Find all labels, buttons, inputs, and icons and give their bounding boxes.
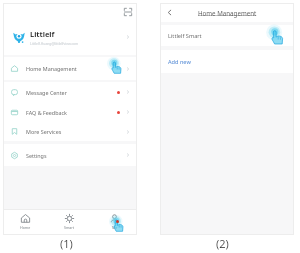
staticText: Me bbox=[112, 225, 118, 230]
button[interactable]: Message Center bbox=[3, 82, 137, 102]
staticText: FAQ & Feedback bbox=[26, 109, 67, 116]
button[interactable]: Me tab bbox=[92, 211, 137, 232]
staticText: Home bbox=[20, 225, 31, 230]
staticText: (1) bbox=[60, 236, 73, 251]
button[interactable]: Settings bbox=[3, 144, 137, 166]
staticText: Littlelf.Huang@littlelfview.com bbox=[30, 41, 79, 46]
staticText: (2) bbox=[216, 236, 229, 251]
staticText: Littlelf bbox=[30, 29, 55, 39]
button[interactable]: Add new bbox=[160, 50, 294, 73]
button[interactable]: More Services bbox=[3, 122, 137, 141]
staticText: Home Management bbox=[198, 9, 257, 17]
staticText: Home Management bbox=[26, 65, 77, 72]
staticText: More Services bbox=[26, 128, 62, 135]
button[interactable]: Home tab bbox=[3, 211, 47, 232]
staticText: Settings bbox=[26, 152, 47, 159]
staticText: Message Center bbox=[26, 89, 67, 96]
staticText: Add new bbox=[168, 58, 191, 66]
staticText: Smart bbox=[64, 225, 75, 230]
button[interactable]: Scan QR code bbox=[124, 8, 132, 16]
staticText: Littlelf Smart bbox=[168, 32, 202, 40]
button[interactable]: FAQ & Feedback bbox=[3, 102, 137, 122]
button[interactable]: Home Management bbox=[3, 57, 137, 80]
button[interactable]: Back bbox=[165, 8, 174, 17]
button[interactable]: Littlelf Smart bbox=[160, 25, 294, 46]
button[interactable]: Smart tab bbox=[47, 211, 92, 232]
button[interactable]: Littlelf bbox=[3, 26, 137, 48]
